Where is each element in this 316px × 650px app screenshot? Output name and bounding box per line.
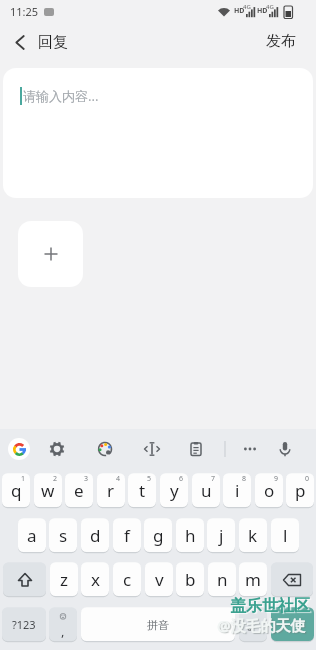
- button[interactable]: c: [113, 562, 141, 597]
- button[interactable]: z: [50, 562, 78, 597]
- button[interactable]: [8, 438, 30, 460]
- button[interactable]: n: [208, 562, 236, 597]
- button[interactable]: w: [34, 473, 62, 508]
- button[interactable]: a: [18, 518, 46, 553]
- staticText: 4G: [243, 3, 251, 11]
- staticText: s: [59, 524, 68, 547]
- staticText: n: [217, 568, 228, 591]
- button[interactable]: [271, 607, 314, 642]
- staticText: e: [74, 479, 84, 502]
- button[interactable]: j: [207, 518, 235, 553]
- button[interactable]: 拼音: [81, 607, 235, 642]
- staticText: ?123: [12, 617, 36, 632]
- button[interactable]: r: [97, 473, 125, 508]
- staticText: HD: [257, 6, 268, 16]
- staticText: 11:25: [10, 4, 39, 19]
- button[interactable]: ,: [49, 607, 77, 642]
- staticText: z: [60, 568, 68, 591]
- button[interactable]: [139, 436, 165, 462]
- button[interactable]: d: [81, 518, 109, 553]
- button[interactable]: b: [176, 562, 204, 597]
- staticText: x: [91, 568, 100, 591]
- staticText: c: [123, 568, 132, 591]
- staticText: d: [90, 524, 101, 547]
- staticText: 3: [84, 474, 89, 484]
- button[interactable]: k: [239, 518, 267, 553]
- button[interactable]: [10, 32, 30, 52]
- staticText: i: [235, 479, 240, 502]
- staticText: 请输入内容...: [23, 87, 99, 105]
- staticText: 2: [53, 474, 58, 484]
- staticText: 8: [242, 474, 247, 484]
- button[interactable]: [272, 436, 298, 462]
- staticText: w: [41, 479, 55, 502]
- staticText: 。: [247, 617, 260, 633]
- staticText: ,: [61, 622, 65, 640]
- button[interactable]: f: [113, 518, 141, 553]
- staticText: l: [283, 524, 288, 547]
- button[interactable]: [92, 436, 118, 462]
- staticText: 4G: [266, 3, 274, 11]
- button[interactable]: [3, 562, 46, 597]
- button[interactable]: [183, 436, 209, 462]
- staticText: 5: [147, 474, 152, 484]
- button[interactable]: i: [223, 473, 251, 508]
- button[interactable]: l: [271, 518, 299, 553]
- button[interactable]: [271, 562, 313, 597]
- staticText: 发布: [266, 32, 296, 51]
- button[interactable]: p: [286, 473, 314, 508]
- button[interactable]: t: [128, 473, 156, 508]
- staticText: @没毛的天使: [217, 615, 306, 635]
- button[interactable]: v: [145, 562, 173, 597]
- staticText: o: [264, 479, 275, 502]
- staticText: j: [219, 524, 224, 547]
- staticText: t: [139, 479, 146, 502]
- staticText: q: [11, 479, 22, 502]
- button[interactable]: ?123: [2, 607, 46, 642]
- button[interactable]: m: [239, 562, 267, 597]
- button[interactable]: q: [2, 473, 30, 508]
- staticText: HD: [234, 6, 245, 16]
- staticText: v: [155, 568, 164, 591]
- staticText: 6: [179, 474, 184, 484]
- staticText: 0: [305, 474, 310, 484]
- button[interactable]: 请输入内容...: [3, 68, 313, 198]
- button[interactable]: 。: [239, 607, 267, 642]
- button[interactable]: [44, 436, 70, 462]
- button[interactable]: h: [176, 518, 204, 553]
- staticText: 1: [21, 474, 26, 484]
- staticText: m: [245, 568, 261, 591]
- button[interactable]: o: [255, 473, 283, 508]
- staticText: 9: [274, 474, 279, 484]
- button[interactable]: 发布: [266, 32, 296, 51]
- staticText: y: [170, 479, 179, 502]
- staticText: u: [201, 479, 212, 502]
- button[interactable]: x: [81, 562, 109, 597]
- button[interactable]: g: [144, 518, 172, 553]
- button[interactable]: y: [160, 473, 188, 508]
- staticText: 4: [116, 474, 121, 484]
- staticText: k: [248, 524, 258, 547]
- staticText: r: [107, 479, 115, 502]
- button[interactable]: [18, 221, 83, 287]
- staticText: a: [27, 524, 37, 547]
- staticText: g: [153, 524, 164, 547]
- staticText: p: [295, 479, 306, 502]
- staticText: f: [124, 524, 130, 547]
- button[interactable]: s: [49, 518, 77, 553]
- button[interactable]: e: [65, 473, 93, 508]
- staticText: h: [185, 524, 196, 547]
- button[interactable]: [237, 436, 263, 462]
- staticText: 拼音: [147, 618, 169, 632]
- staticText: b: [185, 568, 196, 591]
- staticText: 回复: [38, 33, 68, 52]
- staticText: 7: [211, 474, 216, 484]
- staticText: 盖乐世社区: [230, 596, 310, 616]
- button[interactable]: u: [192, 473, 220, 508]
